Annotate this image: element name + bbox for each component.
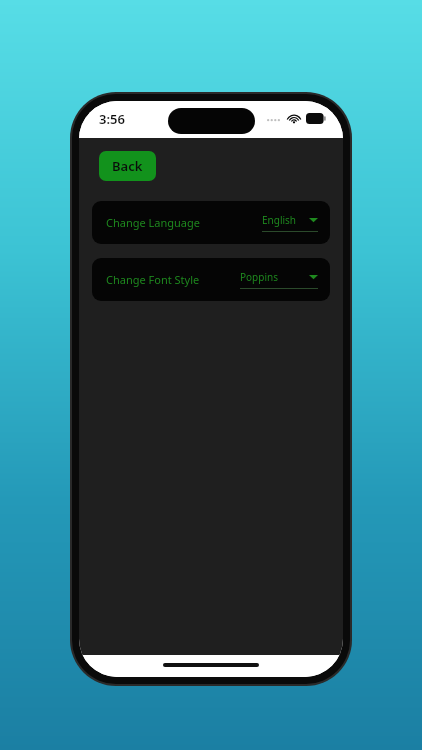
button[interactable]: Change Font Style (92, 258, 330, 301)
button[interactable]: Change Language (92, 201, 330, 244)
staticText: 3:56 (99, 110, 125, 128)
staticText: Change Language (106, 215, 200, 230)
staticText: Poppins (240, 270, 278, 284)
staticText: Back (112, 157, 143, 175)
staticText: English (262, 213, 297, 227)
staticText: Change Font Style (106, 272, 200, 287)
button[interactable]: Back (99, 151, 156, 181)
